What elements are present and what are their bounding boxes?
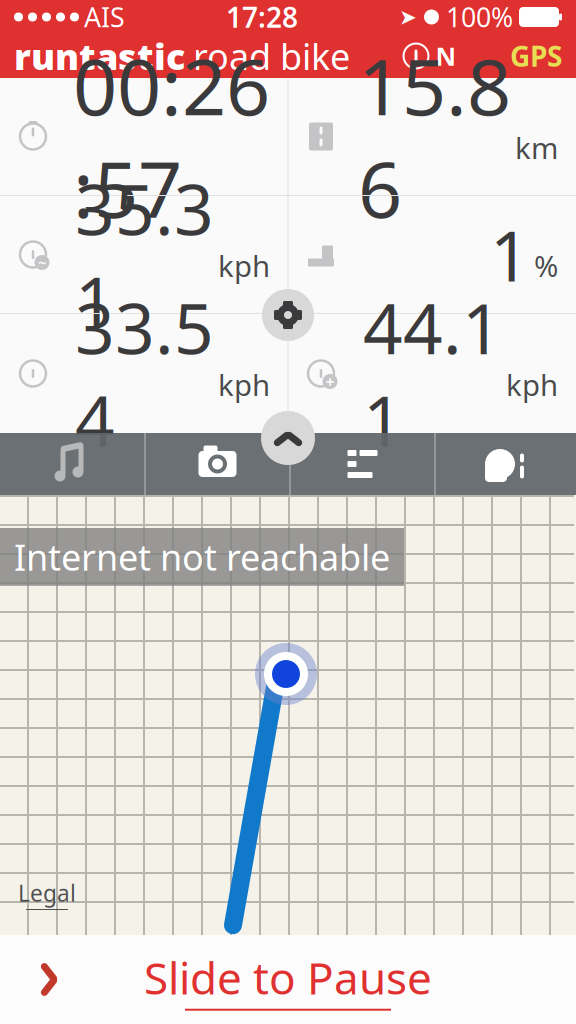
staticText: AIS bbox=[84, 0, 125, 35]
staticText: + bbox=[325, 371, 334, 392]
staticText: % bbox=[534, 246, 558, 285]
staticText: N bbox=[435, 39, 456, 73]
staticText: ~ bbox=[38, 253, 46, 272]
staticText: ➤ bbox=[399, 5, 417, 29]
staticText: kph bbox=[218, 246, 270, 285]
staticText: Internet not reachable bbox=[14, 533, 390, 581]
staticText: Legal bbox=[18, 878, 76, 908]
button[interactable]: Music bbox=[0, 433, 144, 495]
staticText: 15.86 bbox=[358, 34, 511, 239]
staticText: 35.31 bbox=[75, 162, 214, 346]
staticText: 100% bbox=[446, 0, 513, 35]
staticText: kph bbox=[218, 365, 270, 404]
button[interactable]: Expand stats bbox=[261, 411, 315, 465]
staticText: road bike bbox=[193, 32, 350, 80]
button[interactable]: Voice coach bbox=[435, 433, 576, 495]
button[interactable]: Settings bbox=[262, 289, 314, 341]
button[interactable]: Slide to Pause bbox=[0, 935, 576, 1024]
staticText: kph bbox=[506, 365, 558, 404]
staticText: runtastic bbox=[14, 32, 185, 80]
staticText: 1 bbox=[490, 208, 530, 301]
staticText: 17:28 bbox=[226, 0, 298, 36]
button[interactable]: Statistics bbox=[290, 433, 434, 495]
staticText: 00:26:57 bbox=[73, 34, 270, 239]
staticText: Slide to Pause bbox=[144, 948, 432, 1007]
staticText: 44.11 bbox=[363, 281, 502, 465]
staticText: GPS bbox=[510, 37, 562, 75]
button[interactable]: Camera bbox=[145, 433, 289, 495]
staticText: 33.54 bbox=[75, 281, 214, 465]
button[interactable]: Legal bbox=[0, 878, 76, 910]
staticText: km bbox=[515, 128, 558, 167]
